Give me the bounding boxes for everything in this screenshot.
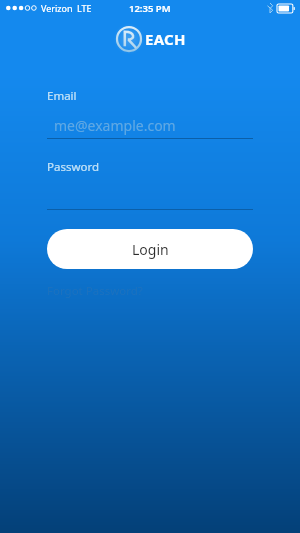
staticText: Email [47,88,77,104]
staticText: Forgot Password? [47,283,143,299]
staticText: Verizon [41,2,73,14]
staticText: EACH [145,29,186,49]
staticText: LTE [77,2,92,14]
staticText: Login [132,240,169,259]
button[interactable]: Forgot Password? [47,281,143,301]
staticText: Password [47,159,100,175]
staticText: 12:35 PM [129,2,171,15]
button[interactable]: me@example.com [47,113,253,137]
staticText: me@example.com [54,116,176,135]
button[interactable]: Login [47,229,253,269]
